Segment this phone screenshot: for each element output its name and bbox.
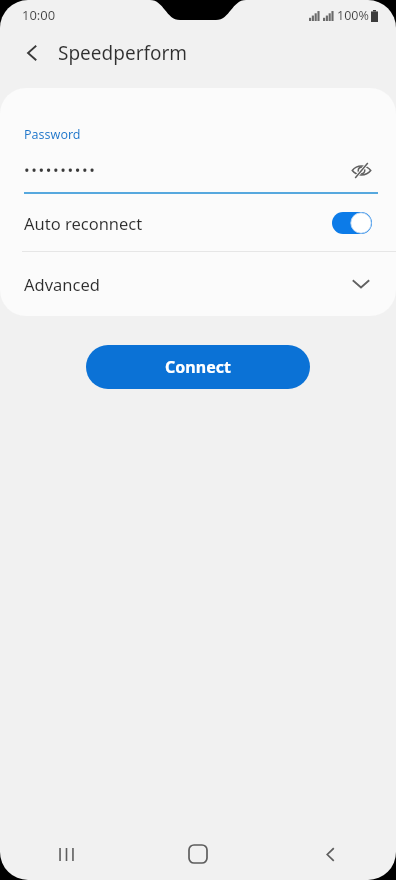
button[interactable]: Recents <box>0 828 132 880</box>
staticText: 100% <box>337 7 369 24</box>
staticText: Advanced <box>24 273 350 295</box>
button[interactable]: Advanced <box>0 252 396 316</box>
staticText: Auto reconnect <box>24 212 332 234</box>
button[interactable]: Auto reconnect toggle <box>332 212 372 234</box>
button[interactable]: Back <box>12 33 52 73</box>
button[interactable]: Back <box>264 828 396 880</box>
staticText: Speedperform <box>58 40 188 66</box>
button[interactable]: Auto reconnect <box>0 194 396 251</box>
staticText: Connect <box>165 356 231 378</box>
button[interactable]: Home <box>132 828 264 880</box>
staticText: 10:00 <box>22 6 56 24</box>
staticText: Password <box>24 126 81 143</box>
staticText: •••••••••• <box>24 160 344 180</box>
button[interactable]: Connect <box>86 345 310 389</box>
button[interactable]: Show password <box>344 157 378 183</box>
